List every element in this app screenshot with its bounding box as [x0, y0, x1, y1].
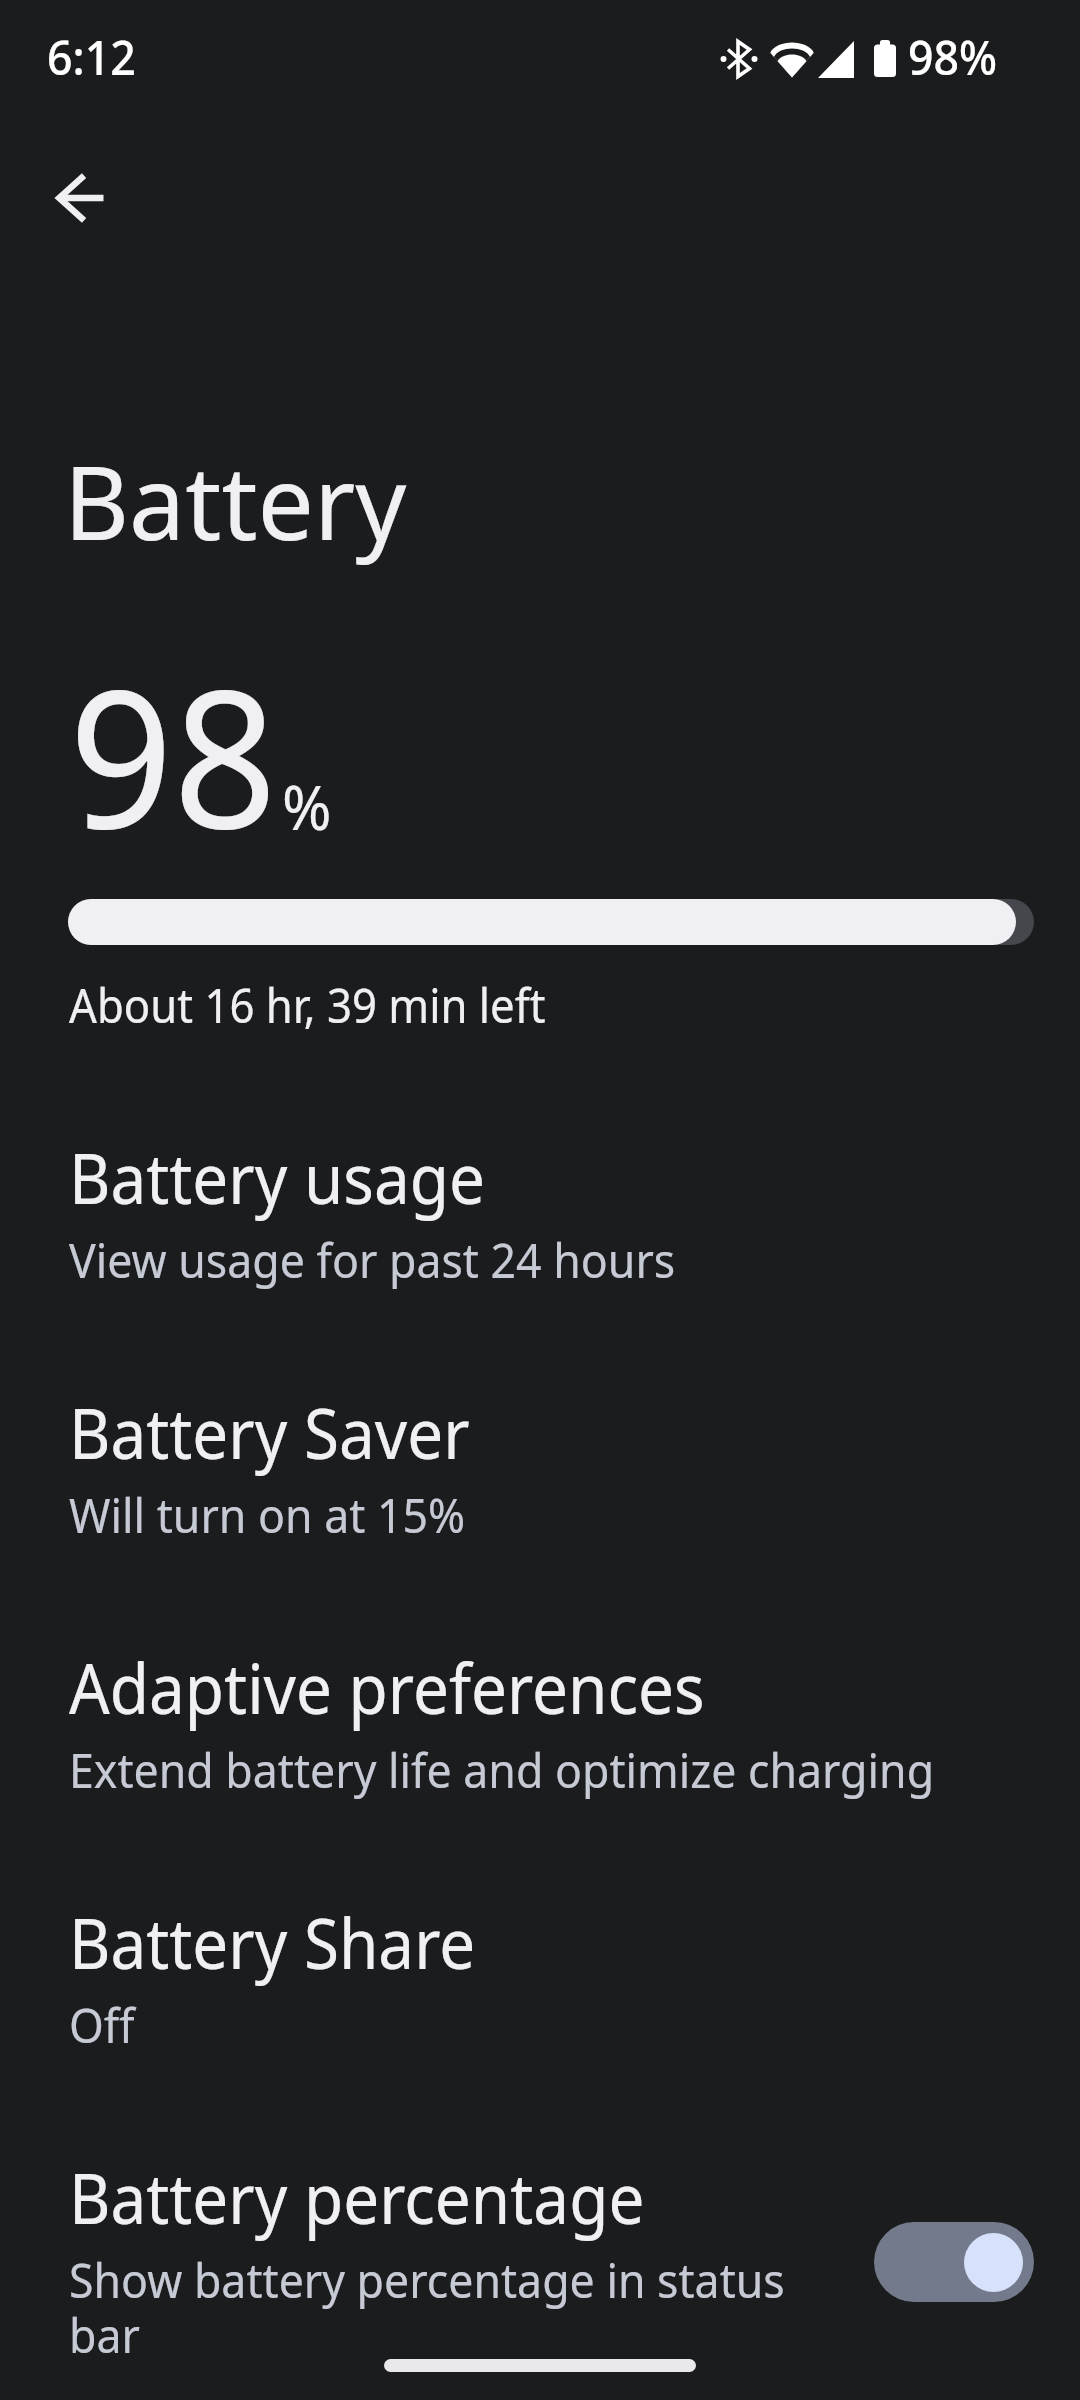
staticText: Adaptive preferences: [69, 1640, 705, 1734]
staticText: About 16 hr, 39 min left: [69, 973, 546, 1037]
button[interactable]: Battery percentage: [0, 2104, 1080, 2319]
button[interactable]: Battery Saver: [0, 1339, 1080, 1554]
button[interactable]: Adaptive preferences: [0, 1594, 1080, 1809]
staticText: 98%: [908, 25, 997, 89]
staticText: Battery: [64, 430, 407, 570]
staticText: Battery Saver: [69, 1385, 469, 1479]
staticText: 98: [69, 625, 278, 884]
button[interactable]: Battery Share: [0, 1849, 1080, 2064]
staticText: Battery Share: [69, 1895, 476, 1989]
staticText: Battery usage: [69, 1130, 485, 1224]
button[interactable]: Navigate up: [32, 150, 128, 246]
button[interactable]: Battery percentage toggle: [874, 2222, 1034, 2302]
staticText: %: [282, 764, 332, 848]
staticText: Off: [69, 1992, 1008, 2057]
staticText: View usage for past 24 hours: [69, 1227, 1008, 1292]
staticText: Battery percentage: [69, 2150, 645, 2244]
staticText: Will turn on at 15%: [69, 1482, 1008, 1547]
button[interactable]: Battery usage: [0, 1084, 1080, 1299]
staticText: Extend battery life and optimize chargin…: [69, 1737, 1008, 1802]
staticText: 6:12: [47, 25, 136, 89]
staticText: Show battery percentage in status bar: [69, 2247, 855, 2367]
